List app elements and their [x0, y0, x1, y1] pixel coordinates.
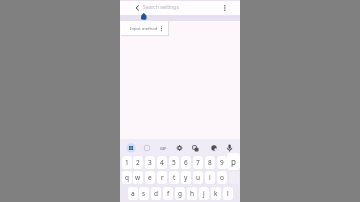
staticText: 6: [184, 158, 188, 167]
button[interactable]: a: [128, 187, 138, 200]
staticText: f: [167, 189, 170, 198]
button[interactable]: 1: [122, 156, 132, 169]
button[interactable]: k: [211, 187, 221, 200]
button[interactable]: [175, 143, 184, 153]
button[interactable]: s: [139, 187, 149, 200]
staticText: e: [148, 173, 152, 182]
staticText: 5: [172, 158, 176, 167]
staticText: h: [190, 189, 195, 198]
staticText: 4: [160, 158, 164, 167]
staticText: u: [196, 173, 201, 182]
staticText: t: [173, 173, 176, 182]
button[interactable]: [192, 145, 199, 152]
button[interactable]: [209, 143, 219, 153]
staticText: Input method: [130, 26, 158, 32]
staticText: 9: [220, 158, 224, 167]
staticText: g: [178, 189, 182, 198]
staticText: k: [214, 189, 218, 198]
button[interactable]: 4: [157, 156, 167, 169]
staticText: y: [184, 173, 188, 182]
button[interactable]: Search settings: [143, 0, 213, 15]
button[interactable]: l: [223, 187, 233, 200]
button[interactable]: 8: [205, 156, 215, 169]
button[interactable]: GIF: [158, 142, 168, 154]
button[interactable]: q: [122, 171, 132, 184]
staticText: l: [227, 189, 229, 198]
staticText: s: [142, 189, 146, 198]
staticText: j: [203, 189, 205, 198]
staticText: 2: [136, 158, 140, 167]
staticText: a: [131, 189, 135, 198]
button[interactable]: y: [181, 171, 191, 184]
button[interactable]: 9: [217, 156, 227, 169]
button[interactable]: w: [133, 171, 143, 184]
button[interactable]: t: [169, 171, 179, 184]
button[interactable]: 2: [133, 156, 143, 169]
staticText: o: [220, 173, 224, 182]
staticText: q: [125, 173, 129, 182]
staticText: d: [154, 189, 158, 198]
button[interactable]: [126, 143, 136, 153]
staticText: 1: [125, 158, 129, 167]
button[interactable]: [132, 2, 143, 14]
button[interactable]: g: [175, 187, 185, 200]
button[interactable]: Input method: [121, 21, 169, 36]
button[interactable]: e: [145, 171, 155, 184]
button[interactable]: 7: [193, 156, 203, 169]
staticText: Search settings: [143, 4, 179, 11]
button[interactable]: u: [193, 171, 203, 184]
staticText: 7: [196, 158, 200, 167]
button[interactable]: 6: [181, 156, 191, 169]
button[interactable]: o: [217, 171, 227, 184]
button[interactable]: r: [157, 171, 167, 184]
staticText: GIF: [160, 146, 167, 151]
button[interactable]: [225, 143, 234, 154]
button[interactable]: [143, 144, 151, 152]
button[interactable]: [219, 2, 231, 14]
staticText: 8: [208, 158, 212, 167]
button[interactable]: 3: [145, 156, 155, 169]
button[interactable]: f: [163, 187, 173, 200]
staticText: 3: [148, 158, 152, 167]
button[interactable]: h: [187, 187, 197, 200]
button[interactable]: p: [227, 153, 240, 170]
button[interactable]: i: [205, 171, 215, 184]
staticText: p: [231, 156, 236, 167]
staticText: w: [135, 173, 141, 182]
staticText: r: [161, 173, 164, 182]
button[interactable]: d: [151, 187, 161, 200]
button[interactable]: 5: [169, 156, 179, 169]
staticText: i: [209, 173, 211, 182]
button[interactable]: j: [199, 187, 209, 200]
